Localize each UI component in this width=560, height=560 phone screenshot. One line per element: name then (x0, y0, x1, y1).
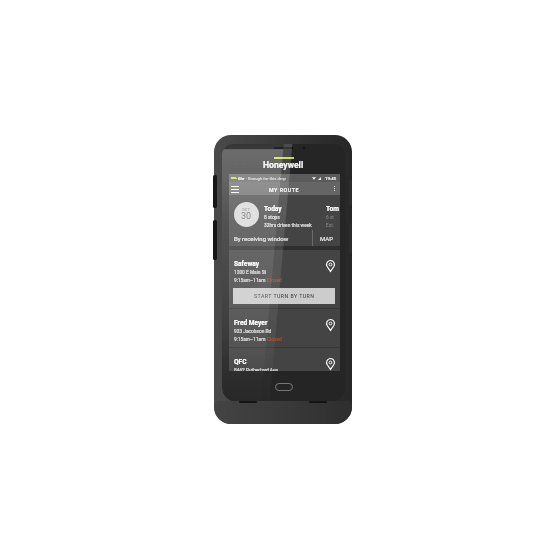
button[interactable]: Scan button (213, 175, 217, 208)
staticText: 30 (241, 211, 252, 222)
button[interactable]: OCT (234, 202, 259, 227)
staticText: START TURN BY TURN (254, 293, 315, 299)
staticText: Honeywell (263, 160, 304, 170)
staticText: Today (264, 205, 282, 213)
staticText: 8 stops (264, 215, 280, 221)
staticText: 6hr (238, 176, 245, 181)
staticText: Est. (326, 223, 335, 229)
button[interactable]: START TURN BY TURN (233, 288, 335, 304)
button[interactable]: Fred Meyer (229, 309, 340, 347)
button[interactable]: By receiving window (229, 230, 312, 246)
button[interactable]: Navigate to stop (326, 260, 335, 272)
button[interactable]: Navigate to stop (326, 358, 335, 370)
staticText: OCT (242, 207, 251, 211)
staticText: By receiving window (234, 235, 289, 242)
staticText: 923 Jacobson Rd (234, 329, 272, 335)
button[interactable]: QFC (229, 348, 340, 371)
staticText: 6 st (326, 215, 334, 221)
staticText: Safeway (234, 260, 260, 268)
staticText: 19:45 (325, 176, 337, 181)
staticText: MY ROUTE (269, 187, 300, 193)
staticText: QFC (234, 358, 247, 366)
staticText: · Enough for this drop (245, 176, 286, 181)
staticText: 32hrs driven this week (264, 223, 312, 229)
button[interactable]: Navigate to stop (326, 319, 335, 331)
button[interactable]: Safeway (229, 250, 340, 288)
staticText: Closed (267, 278, 282, 284)
staticText: 8462 Rutherford Ave (234, 368, 278, 371)
button[interactable]: Volume button (213, 220, 217, 260)
staticText: Tom (326, 205, 339, 213)
staticText: 1200 E Main St (234, 270, 267, 276)
button[interactable]: Open navigation menu (229, 182, 243, 195)
button[interactable]: MAP (313, 230, 340, 246)
button[interactable]: More options (328, 182, 340, 195)
staticText: 9:15am–11am (234, 278, 267, 284)
staticText: MAP (320, 235, 333, 242)
button[interactable]: Home (275, 383, 293, 391)
staticText: Fred Meyer (234, 319, 268, 327)
staticText: Closed (267, 337, 282, 343)
staticText: 9:15am–11am (234, 337, 267, 343)
